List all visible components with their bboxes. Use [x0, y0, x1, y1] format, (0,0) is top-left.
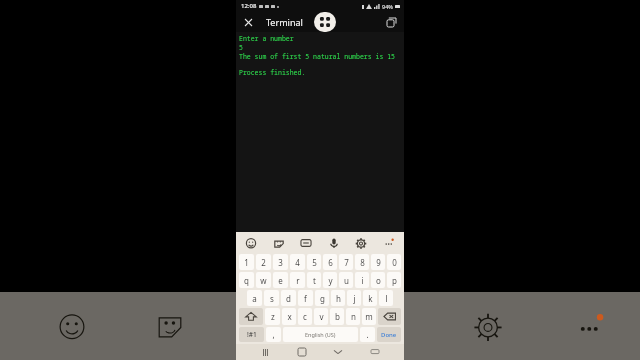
button[interactable]: 8: [355, 254, 369, 270]
staticText: n: [351, 311, 356, 322]
button[interactable]: l: [379, 290, 393, 306]
button[interactable]: Emoji: [54, 308, 90, 344]
button[interactable]: t: [307, 272, 321, 288]
button[interactable]: Settings: [354, 236, 368, 250]
staticText: w: [260, 275, 267, 286]
staticText: o: [376, 275, 381, 286]
button[interactable]: 9: [371, 254, 385, 270]
staticText: y: [328, 275, 333, 286]
staticText: Process finished.: [239, 68, 306, 77]
staticText: ,: [272, 329, 275, 340]
button[interactable]: Clipboard: [299, 236, 313, 250]
button[interactable]: Settings: [470, 308, 506, 344]
button[interactable]: n: [346, 308, 360, 325]
button[interactable]: x: [282, 308, 296, 325]
button[interactable]: Home: [295, 345, 309, 359]
button[interactable]: k: [363, 290, 377, 306]
staticText: k: [368, 293, 373, 304]
staticText: 2: [261, 257, 266, 268]
staticText: d: [286, 293, 291, 304]
staticText: 1: [244, 257, 249, 268]
staticText: m: [365, 311, 373, 322]
staticText: 5: [312, 257, 317, 268]
staticText: 6: [328, 257, 333, 268]
button[interactable]: Hide keyboard: [368, 345, 382, 359]
button[interactable]: Close: [241, 15, 255, 29]
button[interactable]: o: [371, 272, 385, 288]
staticText: .: [366, 329, 369, 340]
button[interactable]: Shift: [239, 308, 263, 325]
staticText: j: [353, 293, 356, 304]
button[interactable]: v: [314, 308, 328, 325]
staticText: b: [335, 311, 340, 322]
staticText: p: [392, 275, 397, 286]
button[interactable]: !#1: [239, 327, 264, 342]
staticText: x: [287, 311, 292, 322]
button[interactable]: p: [387, 272, 401, 288]
staticText: e: [278, 275, 283, 286]
button[interactable]: Stickers: [152, 308, 188, 344]
button[interactable]: ,: [266, 327, 281, 342]
button[interactable]: More options: [382, 236, 396, 250]
button[interactable]: Emoji: [244, 236, 258, 250]
button[interactable]: g: [315, 290, 329, 306]
staticText: 8: [360, 257, 365, 268]
button[interactable]: j: [347, 290, 361, 306]
button[interactable]: h: [331, 290, 345, 306]
button[interactable]: r: [290, 272, 305, 288]
button[interactable]: Done: [377, 327, 401, 342]
button[interactable]: 5: [307, 254, 321, 270]
button[interactable]: a: [247, 290, 262, 306]
staticText: t: [313, 275, 316, 286]
staticText: z: [271, 311, 275, 322]
button[interactable]: 4: [290, 254, 305, 270]
staticText: 4: [295, 257, 300, 268]
button[interactable]: .: [360, 327, 375, 342]
button[interactable]: w: [256, 272, 271, 288]
button[interactable]: d: [281, 290, 296, 306]
staticText: 94%: [382, 3, 393, 10]
button[interactable]: z: [265, 308, 280, 325]
staticText: !#1: [247, 330, 257, 339]
button[interactable]: 6: [323, 254, 337, 270]
button[interactable]: s: [264, 290, 279, 306]
staticText: 0: [392, 257, 397, 268]
button[interactable]: y: [323, 272, 337, 288]
button[interactable]: e: [273, 272, 288, 288]
button[interactable]: Recents: [258, 345, 272, 359]
button[interactable]: u: [339, 272, 353, 288]
button[interactable]: Tabs: [384, 15, 398, 29]
staticText: f: [304, 293, 307, 304]
button[interactable]: m: [362, 308, 376, 325]
button[interactable]: 0: [387, 254, 401, 270]
button[interactable]: 1: [239, 254, 254, 270]
staticText: r: [296, 275, 300, 286]
staticText: Done: [381, 331, 397, 339]
staticText: l: [385, 293, 388, 304]
button[interactable]: Backspace: [378, 308, 401, 325]
staticText: English (US): [305, 331, 336, 338]
button[interactable]: Back: [331, 345, 345, 359]
button[interactable]: English (US): [283, 327, 358, 342]
staticText: a: [252, 293, 257, 304]
button[interactable]: 2: [256, 254, 271, 270]
button[interactable]: c: [298, 308, 312, 325]
staticText: 9: [376, 257, 381, 268]
staticText: h: [336, 293, 341, 304]
staticText: 7: [344, 257, 349, 268]
button[interactable]: More options: [572, 308, 608, 344]
button[interactable]: Keyboard grid: [314, 12, 336, 32]
staticText: The sum of first 5 natural numbers is 15: [239, 52, 396, 61]
staticText: i: [361, 275, 364, 286]
staticText: s: [270, 293, 274, 304]
button[interactable]: Voice input: [327, 236, 341, 250]
button[interactable]: f: [298, 290, 313, 306]
button[interactable]: 3: [273, 254, 288, 270]
button[interactable]: b: [330, 308, 344, 325]
button[interactable]: Stickers: [272, 236, 286, 250]
button[interactable]: i: [355, 272, 369, 288]
button[interactable]: q: [239, 272, 254, 288]
button[interactable]: 7: [339, 254, 353, 270]
staticText: 3: [278, 257, 283, 268]
staticText: c: [303, 311, 307, 322]
